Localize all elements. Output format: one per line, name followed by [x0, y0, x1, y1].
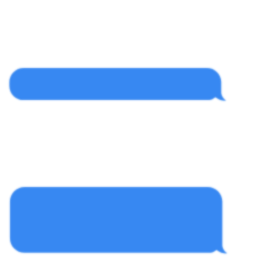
button[interactable]: Message bubble 2	[10, 187, 227, 253]
button[interactable]: Message bubble 1	[9, 68, 226, 100]
